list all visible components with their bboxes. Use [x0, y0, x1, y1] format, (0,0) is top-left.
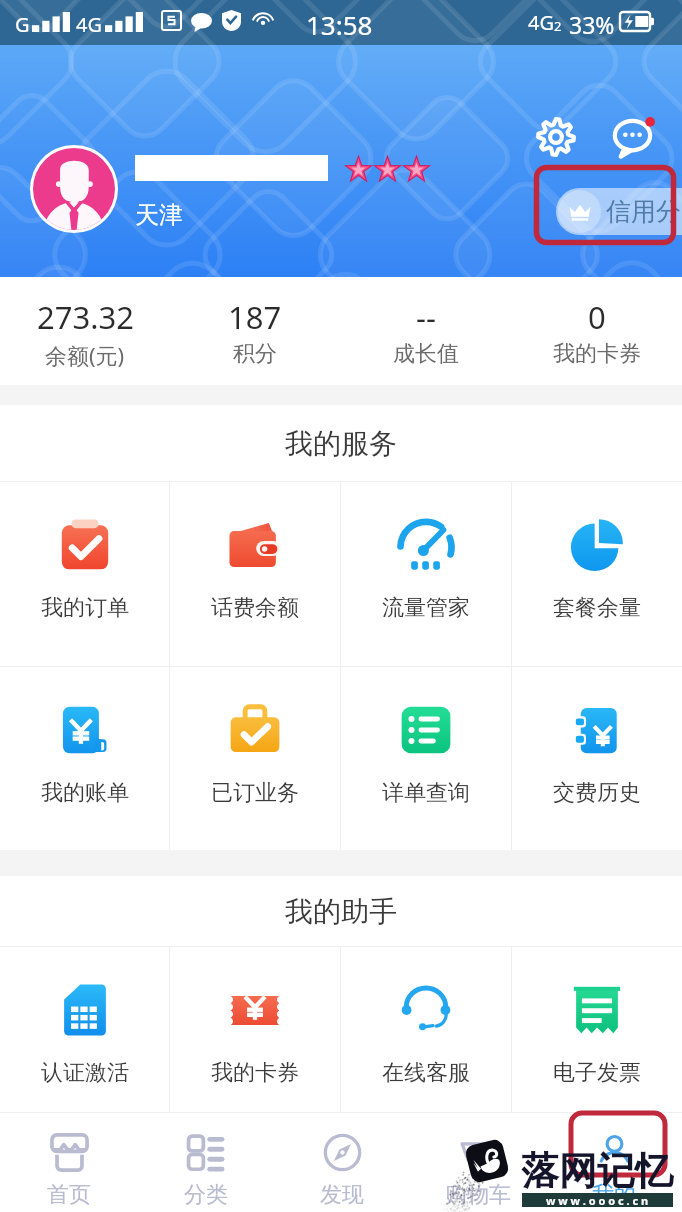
button[interactable]: 详单查询 [341, 667, 511, 807]
staticText: 13:58 [306, 7, 373, 42]
button[interactable]: 首页 [0, 1116, 137, 1209]
button[interactable]: 187 [170, 277, 340, 385]
staticText: 余额(元) [45, 340, 125, 370]
staticText: 我的助手 [285, 894, 397, 929]
staticText: 已订业务 [211, 779, 299, 807]
staticText: w w w . o o o c . c n [546, 1193, 649, 1207]
staticText: 购物车 [445, 1181, 511, 1209]
staticText: 成长值 [393, 340, 459, 368]
staticText: 187 [228, 296, 282, 338]
button[interactable]: -- [340, 277, 511, 385]
staticText: 天津 [135, 200, 183, 230]
staticText: 详单查询 [382, 779, 470, 807]
button[interactable]: 在线客服 [341, 947, 511, 1087]
button[interactable]: 认证激活 [0, 947, 169, 1087]
button[interactable]: Messages [608, 109, 662, 163]
staticText: 话费余额 [211, 594, 299, 622]
button[interactable]: 273.32 [0, 277, 170, 385]
staticText: 4G [528, 9, 554, 36]
button[interactable]: 电子发票 [512, 947, 682, 1087]
staticText: 我的卡券 [553, 340, 641, 368]
staticText: 积分 [233, 340, 277, 368]
staticText: 电子发票 [553, 1059, 641, 1087]
staticText: 4G [76, 11, 102, 38]
staticText: 0 [588, 296, 606, 338]
staticText: 我的订单 [41, 594, 129, 622]
staticText: 流量管家 [382, 594, 470, 622]
staticText: 33% [569, 9, 615, 40]
staticText: 首页 [47, 1181, 91, 1209]
staticText: 我的卡券 [211, 1059, 299, 1087]
button[interactable]: 发现 [274, 1116, 410, 1209]
button[interactable]: 我的账单 [0, 667, 169, 807]
staticText: 分类 [184, 1181, 228, 1209]
staticText: 我的服务 [285, 426, 397, 461]
staticText: 套餐余量 [553, 594, 641, 622]
staticText: G [15, 11, 30, 38]
button[interactable]: Settings [533, 114, 579, 160]
staticText: 我的 [592, 1181, 636, 1209]
button[interactable]: 套餐余量 [512, 482, 682, 622]
button[interactable]: 我的卡券 [170, 947, 340, 1087]
button[interactable]: 0 [511, 277, 682, 385]
staticText: 我的账单 [41, 779, 129, 807]
staticText: 2 [554, 17, 562, 35]
staticText: 273.32 [37, 296, 134, 338]
button[interactable]: 我的订单 [0, 482, 169, 622]
staticText: 发现 [320, 1181, 364, 1209]
button[interactable]: 话费余额 [170, 482, 340, 622]
button[interactable]: 交费历史 [512, 667, 682, 807]
button[interactable]: 购物车 [410, 1116, 546, 1209]
staticText: 落网记忆 [521, 1147, 673, 1195]
button[interactable]: 信用分 [556, 188, 682, 235]
staticText: 信用分 [606, 196, 681, 227]
staticText: 认证激活 [41, 1059, 129, 1087]
button[interactable]: Profile avatar [33, 148, 115, 230]
button[interactable]: 我的 [546, 1116, 682, 1209]
button[interactable]: 已订业务 [170, 667, 340, 807]
staticText: 交费历史 [553, 779, 641, 807]
staticText: 在线客服 [382, 1059, 470, 1087]
button[interactable]: 流量管家 [341, 482, 511, 622]
button[interactable]: 分类 [137, 1116, 274, 1209]
staticText: -- [416, 296, 436, 338]
